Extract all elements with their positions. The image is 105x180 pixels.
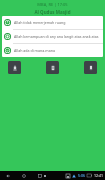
button[interactable]: Bookmark	[84, 61, 97, 74]
button[interactable]: Home	[20, 172, 27, 179]
button[interactable]: Allah ada di mana-mana	[2, 44, 103, 57]
button[interactable]: Allah tidak menerjemah ruang	[2, 16, 103, 29]
button[interactable]: Copy	[46, 61, 59, 74]
button[interactable]: Allah kemampuan di any ana langit atas a…	[2, 30, 103, 43]
button[interactable]: Back	[4, 172, 11, 179]
staticText: 5:06	[78, 173, 85, 178]
button[interactable]: Share	[8, 61, 21, 74]
staticText: 12:41	[94, 173, 103, 178]
staticText: MBA, RE | 17:05	[37, 2, 68, 7]
staticText: Al Qudus Masjid	[34, 9, 71, 15]
button[interactable]: Recent apps	[36, 172, 43, 179]
staticText: Allah ada di mana-mana	[14, 48, 55, 53]
staticText: Allah kemampuan di any ana langit atas a…	[14, 34, 99, 39]
staticText: Allah tidak menerjemah ruang	[14, 20, 66, 25]
